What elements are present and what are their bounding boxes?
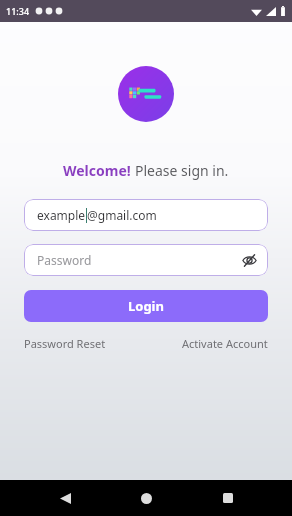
button[interactable]: Home xyxy=(129,481,163,515)
button[interactable]: Show password xyxy=(240,251,258,269)
staticText: Activate Account xyxy=(182,336,268,351)
staticText: Welcome! xyxy=(63,161,131,180)
staticText: Please sign in. xyxy=(135,161,229,180)
staticText: Password xyxy=(37,252,92,268)
button[interactable]: Password xyxy=(24,244,268,276)
staticText: Password Reset xyxy=(24,336,106,351)
button[interactable]: Activate Account xyxy=(182,336,268,351)
button[interactable]: Back xyxy=(48,481,82,515)
button[interactable]: example xyxy=(24,199,268,231)
staticText: example xyxy=(37,207,86,223)
staticText: Login xyxy=(128,297,164,315)
staticText: @gmail.com xyxy=(87,207,157,223)
button[interactable]: Password Reset xyxy=(24,336,106,351)
button[interactable]: Login xyxy=(24,290,268,322)
button[interactable]: Recent apps xyxy=(211,481,245,515)
staticText: 11:34 xyxy=(6,5,30,17)
